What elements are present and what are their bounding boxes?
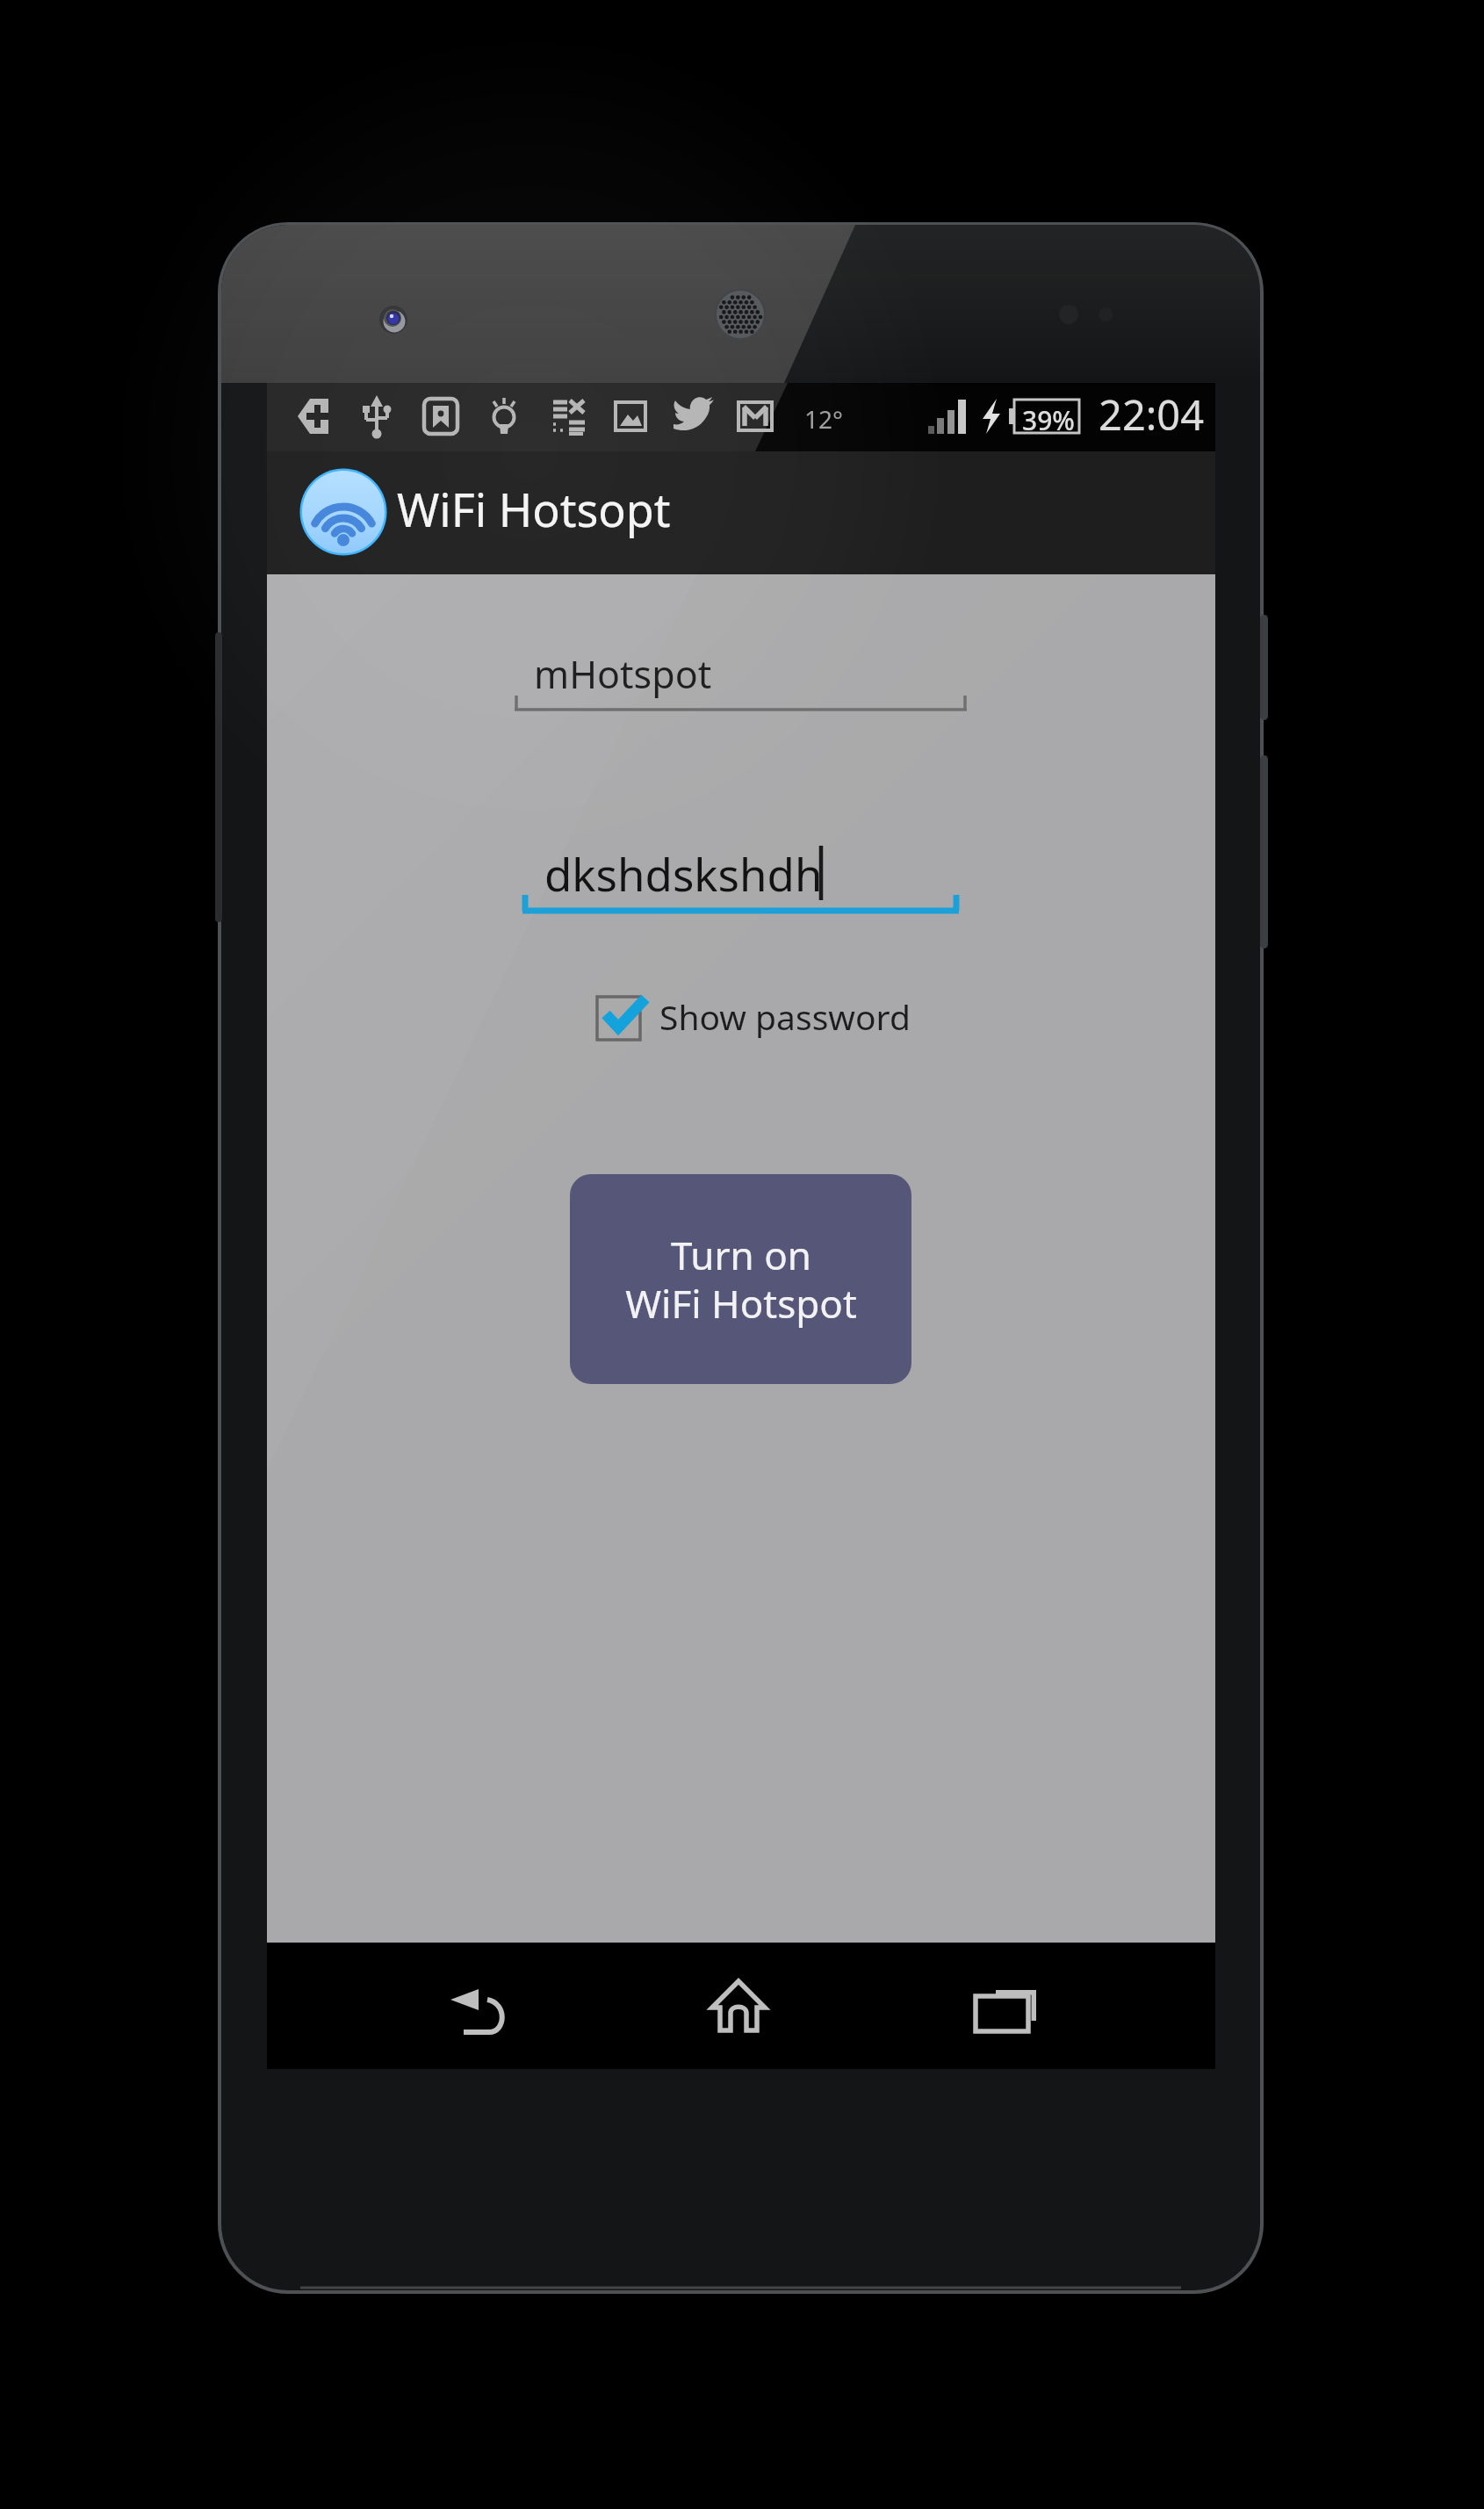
button[interactable]: WiFi Hotsopt (267, 451, 1215, 574)
staticText: WiFi Hotsopt (397, 478, 671, 540)
button[interactable]: Recent apps (936, 1947, 1077, 2073)
button[interactable]: Home (668, 1943, 809, 2069)
button[interactable]: Turn on WiFi Hotspot (570, 1174, 911, 1384)
staticText: Show password (659, 993, 911, 1040)
staticText: mHotspot (534, 648, 712, 700)
staticText: dkshdskshdh (544, 843, 823, 904)
button[interactable]: Show password (583, 985, 911, 1047)
staticText: 12° (804, 402, 844, 436)
staticText: 22:04 (1099, 386, 1205, 443)
button[interactable]: dkshdskshdh (522, 831, 959, 915)
button[interactable]: mHotspot (515, 629, 967, 713)
staticText: Turn on WiFi Hotspot (625, 1229, 857, 1330)
button[interactable]: Back (409, 1949, 550, 2075)
staticText: 39% (1022, 402, 1075, 438)
